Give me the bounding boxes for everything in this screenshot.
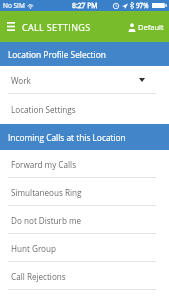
staticText: Location Profile Selection xyxy=(8,49,106,60)
staticText: Default xyxy=(138,22,164,32)
button[interactable]: Location Profile Selection xyxy=(0,42,169,66)
button[interactable]: Do not Disturb me xyxy=(0,206,169,234)
staticText: 97% xyxy=(136,1,149,10)
staticText: Call Rejections xyxy=(11,271,66,282)
staticText: Location Settings xyxy=(11,104,76,115)
staticText: Hunt Group xyxy=(11,243,56,254)
button[interactable]: Simultaneous Ring xyxy=(0,178,169,206)
staticText: Work xyxy=(11,75,31,86)
staticText: No SIM xyxy=(3,1,25,10)
staticText: Incoming Calls at this Location xyxy=(8,132,126,143)
staticText: Simultaneous Ring xyxy=(11,187,82,198)
button[interactable]: Location Settings xyxy=(0,94,169,124)
staticText: 8:27 PM xyxy=(72,1,98,10)
button[interactable]: Incoming Calls at this Location xyxy=(0,124,169,150)
staticText: CALL SETTINGS xyxy=(22,21,91,33)
button[interactable]: Forward my Calls xyxy=(0,150,169,178)
button[interactable]: Default xyxy=(128,22,164,32)
staticText: Do not Disturb me xyxy=(11,215,82,226)
button[interactable]: Call Rejections xyxy=(0,262,169,290)
button[interactable]: Open navigation menu xyxy=(0,11,22,42)
button[interactable]: Work xyxy=(0,66,169,94)
staticText: Forward my Calls xyxy=(11,159,77,170)
button[interactable]: Hunt Group xyxy=(0,234,169,262)
